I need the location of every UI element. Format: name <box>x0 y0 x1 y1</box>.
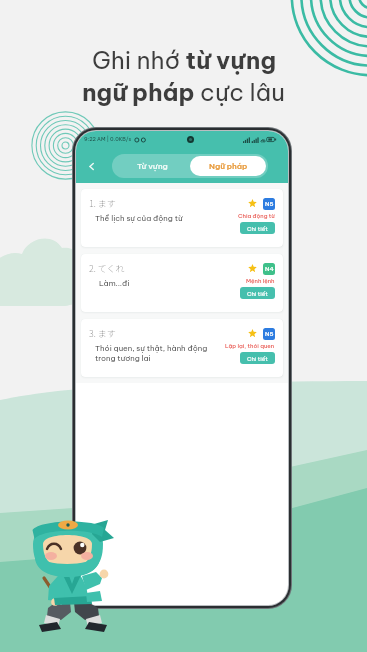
button[interactable]: 3. ます <box>81 319 283 377</box>
button[interactable]: Ngữ pháp <box>190 161 266 171</box>
button[interactable]: Từ vựng <box>114 161 190 171</box>
staticText: Từ vựng <box>137 161 168 171</box>
staticText: ngữ pháp cực lâu <box>82 77 285 107</box>
staticText: Thói quen, sự thật, hành động <box>95 343 208 353</box>
staticText: Ngữ pháp <box>209 161 248 171</box>
staticText: Mệnh lệnh <box>246 277 275 284</box>
staticText: N5 <box>265 200 274 208</box>
staticText: N4 <box>265 265 274 273</box>
staticText: Chi tiết <box>247 225 268 232</box>
staticText: 1. ます <box>89 197 116 210</box>
staticText: trong tương lai <box>95 353 151 363</box>
staticText: 9:22 AM | 0.0KB/s <box>84 136 132 143</box>
staticText: Ghi nhớ từ vựng <box>92 45 276 75</box>
staticText: Lặp lại, thói quen <box>225 342 275 349</box>
button[interactable]: 1. ます <box>81 189 283 247</box>
staticText: Chi tiết <box>247 290 268 297</box>
staticText: Làm...đi <box>99 278 130 288</box>
staticText: 3. ます <box>89 327 116 340</box>
staticText: Chia động từ <box>238 212 275 219</box>
button[interactable]: Back <box>83 158 99 174</box>
staticText: N5 <box>265 330 274 338</box>
button[interactable]: Chi tiết <box>240 287 275 299</box>
button[interactable]: Chi tiết <box>240 352 275 364</box>
button[interactable]: Chi tiết <box>240 222 275 234</box>
staticText: Thể lịch sự của động từ <box>95 213 183 223</box>
staticText: 2. てくれ <box>89 262 125 275</box>
staticText: Chi tiết <box>247 355 268 362</box>
button[interactable]: 2. てくれ <box>81 254 283 312</box>
